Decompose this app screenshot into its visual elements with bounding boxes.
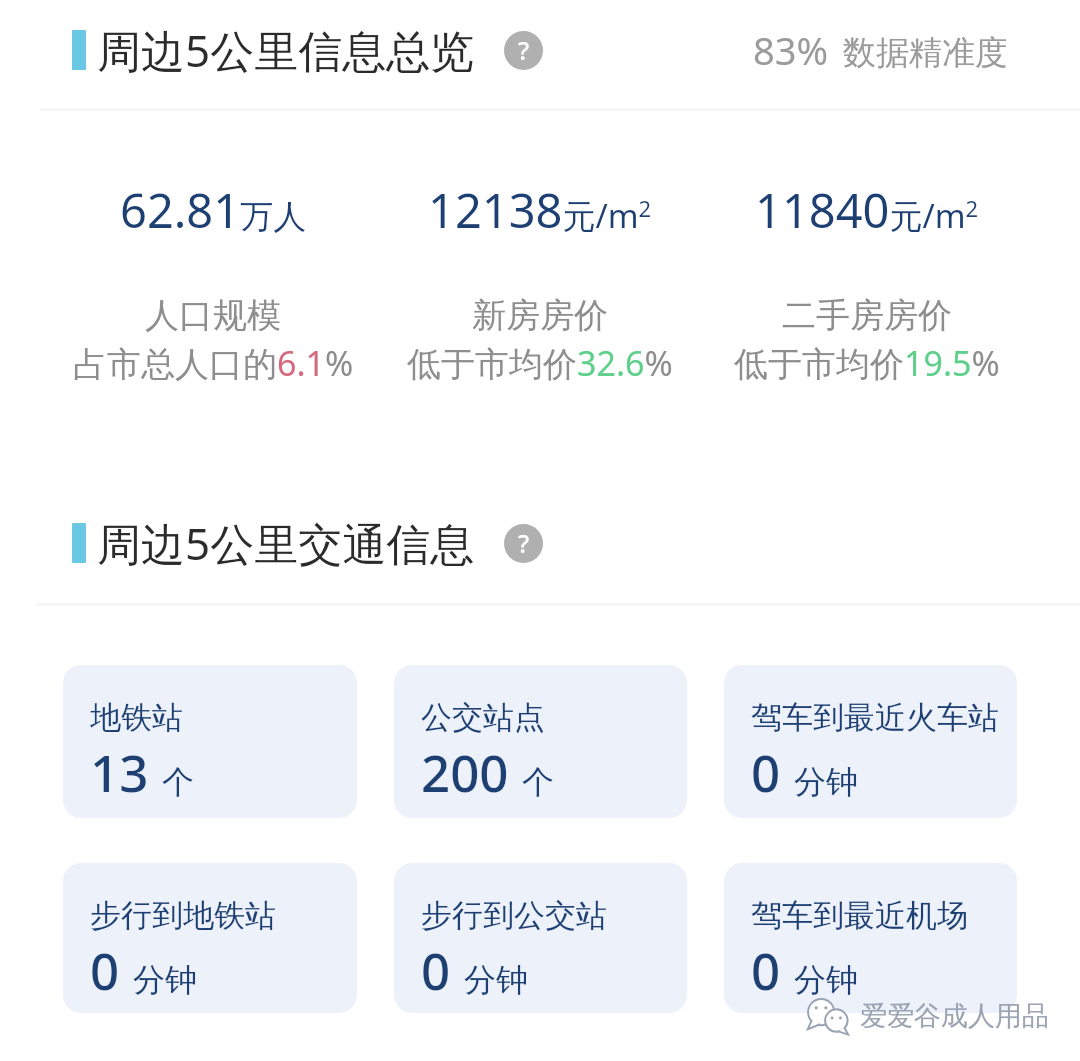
staticText: 二手房房价 bbox=[782, 294, 952, 337]
staticText: 个 bbox=[522, 762, 554, 802]
staticText: 分钟 bbox=[133, 960, 197, 1000]
staticText: 数据精准度 bbox=[843, 32, 1008, 74]
staticText: 0 bbox=[751, 737, 781, 806]
button[interactable]: 12138元/m2 bbox=[376, 178, 703, 386]
staticText: 爱爱谷成人用品 bbox=[860, 999, 1049, 1033]
staticText: 13 bbox=[90, 737, 149, 806]
staticText: 200 bbox=[421, 737, 509, 806]
staticText: 0 bbox=[90, 935, 120, 1004]
button[interactable]: Help bbox=[504, 524, 543, 563]
staticText: 分钟 bbox=[464, 960, 528, 1000]
staticText: ? bbox=[518, 526, 530, 560]
staticText: 12138元/m2 bbox=[428, 178, 652, 242]
staticText: 占市总人口的6.1% bbox=[73, 340, 354, 386]
staticText: 人口规模 bbox=[145, 294, 281, 337]
button[interactable]: 公交站点 bbox=[394, 665, 687, 818]
staticText: 低于市均价32.6% bbox=[407, 340, 673, 386]
staticText: 地铁站 bbox=[90, 698, 183, 737]
staticText: 分钟 bbox=[794, 762, 858, 802]
button[interactable]: 步行到地铁站 bbox=[63, 863, 357, 1013]
staticText: 步行到地铁站 bbox=[90, 896, 276, 935]
staticText: 低于市均价19.5% bbox=[734, 340, 1000, 386]
staticText: 62.81万人 bbox=[120, 178, 307, 242]
staticText: 步行到公交站 bbox=[421, 896, 607, 935]
staticText: 0 bbox=[421, 935, 451, 1004]
button[interactable]: 步行到公交站 bbox=[394, 863, 687, 1013]
button[interactable]: 62.81万人 bbox=[50, 178, 376, 386]
staticText: 11840元/m2 bbox=[755, 178, 979, 242]
staticText: 驾车到最近火车站 bbox=[751, 698, 999, 737]
staticText: ? bbox=[518, 33, 530, 67]
staticText: 周边5公里交通信息 bbox=[97, 513, 475, 573]
button[interactable]: 地铁站 bbox=[63, 665, 357, 818]
staticText: 83% bbox=[753, 24, 829, 76]
staticText: 分钟 bbox=[794, 960, 858, 1000]
staticText: 驾车到最近机场 bbox=[751, 896, 968, 935]
staticText: 公交站点 bbox=[421, 698, 545, 737]
button[interactable]: Help bbox=[504, 31, 543, 70]
button[interactable]: 11840元/m2 bbox=[703, 178, 1030, 386]
button[interactable]: 驾车到最近机场 bbox=[724, 863, 1017, 1013]
button[interactable]: 驾车到最近火车站 bbox=[724, 665, 1017, 818]
staticText: 个 bbox=[162, 762, 194, 802]
staticText: 新房房价 bbox=[472, 294, 608, 337]
staticText: 周边5公里信息总览 bbox=[97, 20, 475, 80]
staticText: 0 bbox=[751, 935, 781, 1004]
